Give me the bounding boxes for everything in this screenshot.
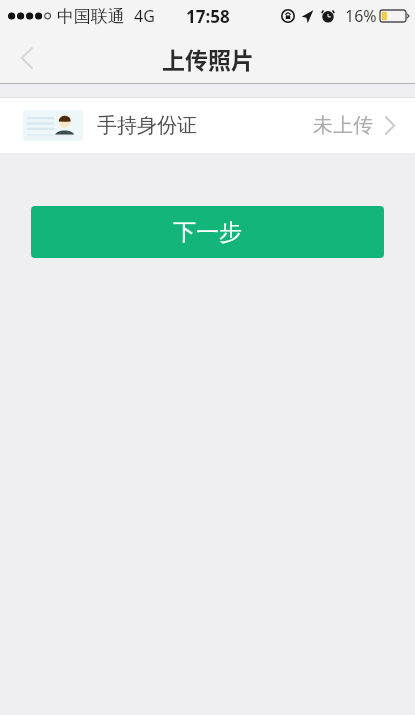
button[interactable]: Back [0, 32, 52, 84]
staticText: 中国联通 [57, 6, 125, 27]
staticText: 下一步 [173, 218, 242, 247]
staticText: 17:58 [186, 5, 230, 28]
staticText: 上传照片 [162, 42, 254, 75]
staticText: 未上传 [313, 113, 373, 138]
button[interactable]: 下一步 [31, 206, 384, 258]
staticText: 手持身份证 [97, 113, 197, 138]
button[interactable]: 手持身份证 [0, 97, 415, 153]
staticText: 4G [134, 5, 155, 27]
staticText: 16% [345, 5, 377, 27]
